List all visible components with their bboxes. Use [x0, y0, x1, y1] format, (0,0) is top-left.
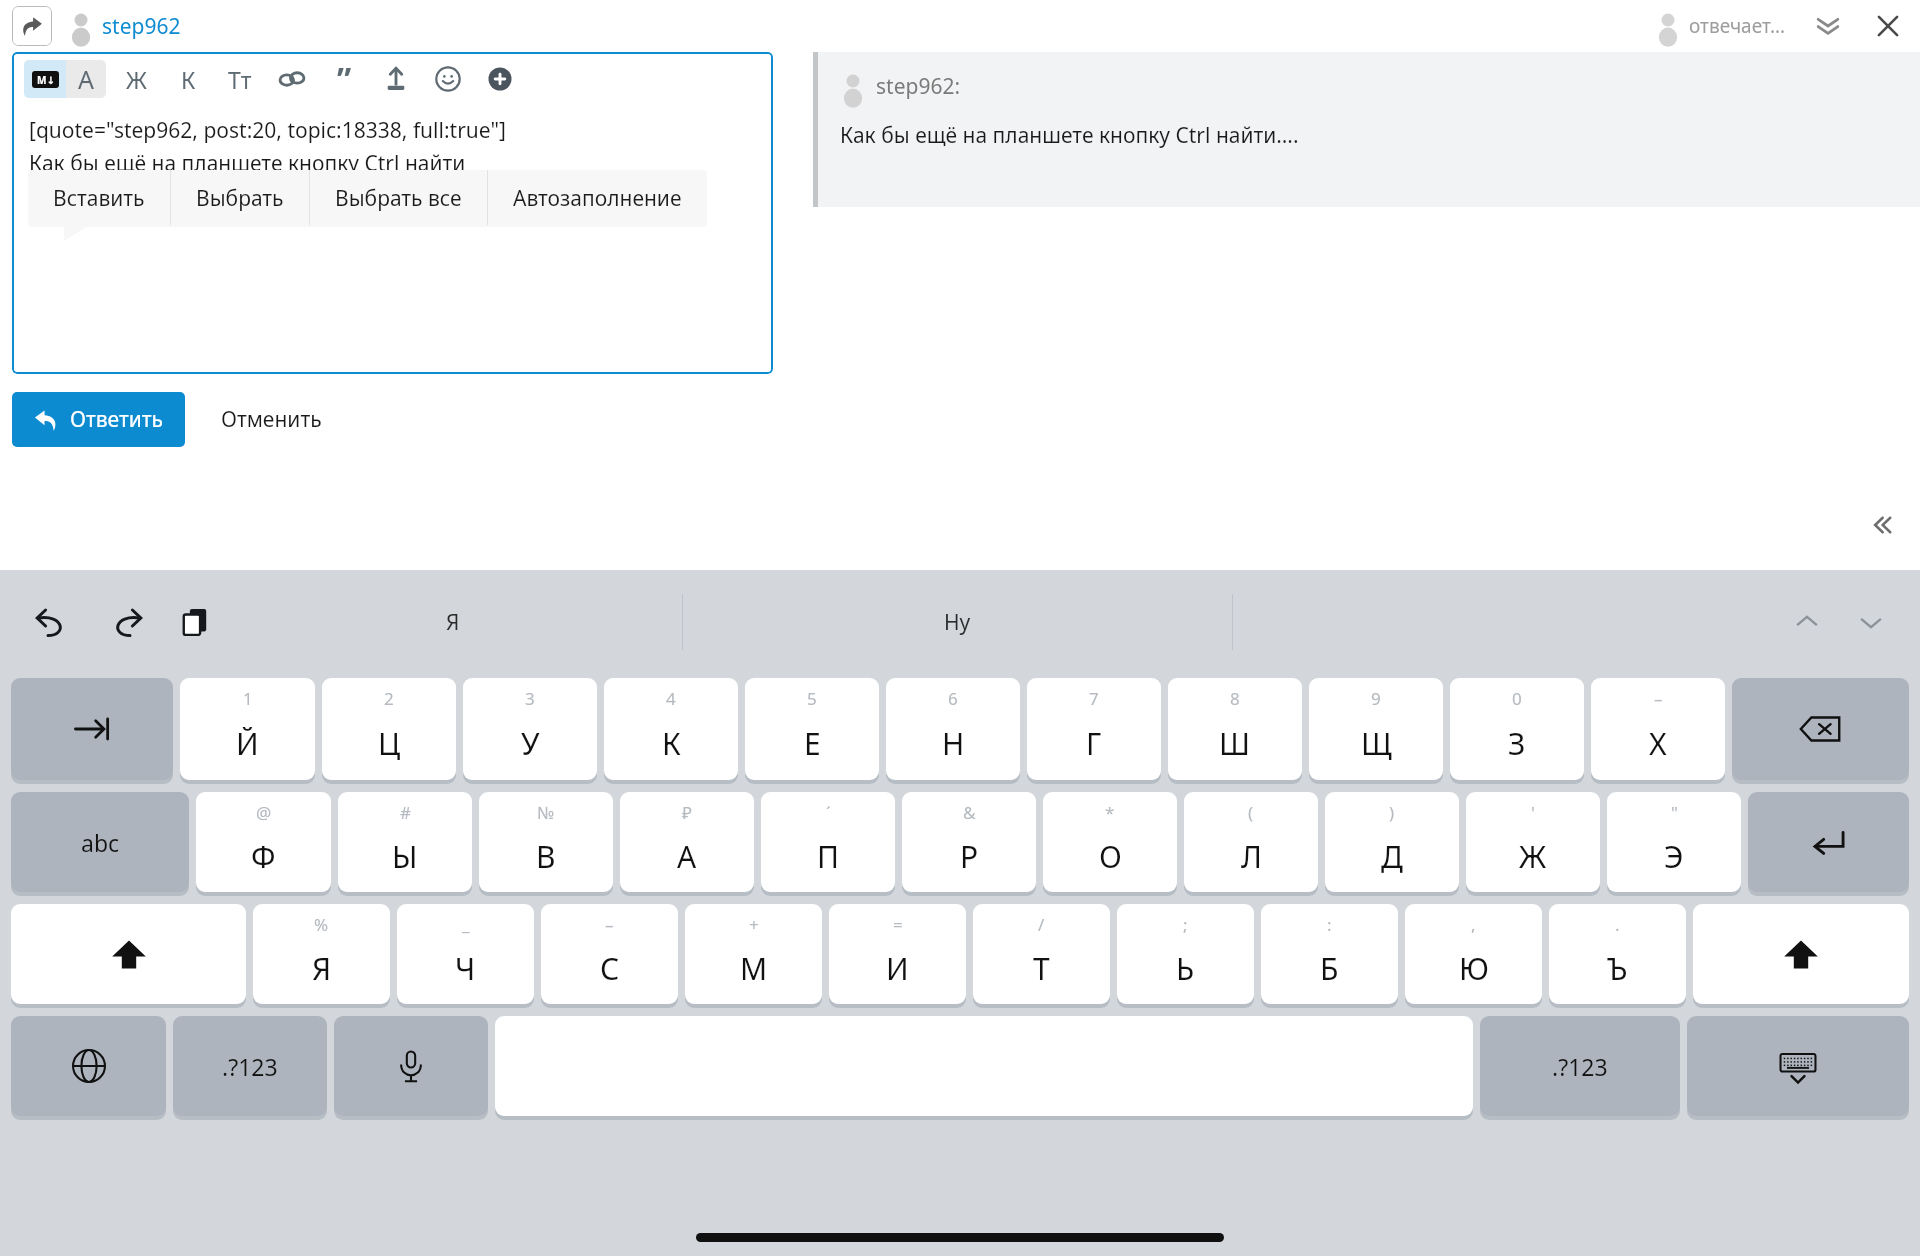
button[interactable]: Italic — [166, 57, 210, 101]
button[interactable]: Upload — [374, 57, 418, 101]
staticText: Я — [312, 948, 332, 989]
staticText: Б — [1320, 948, 1339, 989]
button[interactable]: ( — [1184, 792, 1318, 892]
staticText: О — [1099, 836, 1122, 877]
button[interactable]: Voice input — [334, 1016, 488, 1116]
button[interactable]: 2 — [322, 678, 456, 780]
staticText: № — [537, 801, 555, 824]
button[interactable]: Enter — [1748, 792, 1909, 892]
button[interactable]: Отменить — [211, 395, 332, 444]
button[interactable]: 7 — [1027, 678, 1161, 780]
button[interactable]: . — [1549, 904, 1686, 1004]
button[interactable]: Ответить — [12, 392, 185, 447]
button[interactable]: step962 — [102, 12, 181, 41]
button[interactable]: ₽ — [620, 792, 754, 892]
button[interactable]: = — [829, 904, 966, 1004]
staticText: 5 — [807, 687, 817, 710]
button[interactable]: 0 — [1450, 678, 1584, 780]
button[interactable]: Shift — [1693, 904, 1909, 1004]
staticText: Вставить — [53, 184, 145, 213]
button[interactable]: Font — [66, 60, 106, 98]
button[interactable]: Я — [224, 570, 682, 674]
button[interactable]: Close — [1870, 8, 1906, 44]
button[interactable]: & — [902, 792, 1036, 892]
staticText: 0 — [1512, 687, 1522, 710]
button[interactable]: Tab — [11, 678, 173, 780]
button[interactable]: ´ — [761, 792, 895, 892]
button[interactable]: # — [338, 792, 472, 892]
staticText: И — [886, 948, 909, 989]
button[interactable]: Markdown — [24, 60, 66, 98]
button[interactable]: Clipboard — [168, 594, 224, 650]
button[interactable]: , — [1405, 904, 1542, 1004]
button[interactable]: .?123 — [1480, 1016, 1680, 1116]
button[interactable]: ; — [1117, 904, 1254, 1004]
button[interactable]: : — [1261, 904, 1398, 1004]
button[interactable]: Backspace — [1732, 678, 1909, 780]
button[interactable]: Link — [270, 57, 314, 101]
button[interactable]: 4 — [604, 678, 738, 780]
staticText: А — [677, 836, 697, 877]
button[interactable]: * — [1043, 792, 1177, 892]
staticText: Выбрать все — [335, 184, 462, 213]
staticText: 2 — [384, 687, 394, 710]
button[interactable]: % — [253, 904, 390, 1004]
button[interactable]: Автозаполнение — [488, 170, 707, 227]
button[interactable]: – — [1591, 678, 1725, 780]
button[interactable]: Ну — [683, 570, 1232, 674]
staticText: К — [181, 64, 196, 95]
staticText: Tт — [228, 64, 252, 95]
staticText: 3 — [525, 687, 535, 710]
button[interactable]: 5 — [745, 678, 879, 780]
button[interactable]: abc — [11, 792, 189, 892]
button[interactable]: More options — [478, 57, 522, 101]
staticText: ' — [1531, 801, 1535, 824]
button[interactable]: Language — [11, 1016, 166, 1116]
staticText: Ж — [126, 64, 147, 95]
button[interactable]: Emoji — [426, 57, 470, 101]
staticText: Х — [1649, 723, 1667, 764]
button[interactable]: @ — [196, 792, 331, 892]
button[interactable]: Bold — [114, 57, 158, 101]
staticText: : — [1327, 913, 1332, 936]
button[interactable]: / — [973, 904, 1110, 1004]
staticText: Т — [1033, 948, 1050, 989]
button[interactable]: " — [1607, 792, 1741, 892]
button[interactable]: 6 — [886, 678, 1020, 780]
button[interactable]: _ — [397, 904, 534, 1004]
button[interactable]: 3 — [463, 678, 597, 780]
staticText: В — [536, 836, 556, 877]
button[interactable]: Hide keyboard — [1687, 1016, 1909, 1116]
button[interactable]: Heading — [218, 57, 262, 101]
button[interactable]: 9 — [1309, 678, 1443, 780]
button[interactable]: Undo — [24, 594, 80, 650]
button[interactable]: + — [685, 904, 822, 1004]
staticText: Р — [960, 836, 979, 877]
button[interactable]: Shift — [11, 904, 246, 1004]
staticText: – — [1654, 687, 1663, 710]
button[interactable]: Next field — [1846, 597, 1896, 647]
button[interactable]: Expand — [1810, 8, 1846, 44]
button[interactable]: Redo — [98, 594, 154, 650]
button[interactable]: Вставить — [28, 170, 170, 227]
button[interactable]: ) — [1325, 792, 1459, 892]
button[interactable]: № — [479, 792, 613, 892]
staticText: отвечает… — [1689, 13, 1786, 39]
staticText: ) — [1389, 801, 1395, 824]
staticText: 7 — [1089, 687, 1099, 710]
button[interactable]: Выбрать все — [310, 170, 487, 227]
button[interactable]: .?123 — [173, 1016, 327, 1116]
button[interactable]: – — [541, 904, 678, 1004]
button[interactable]: Reply — [12, 6, 52, 46]
button[interactable]: 8 — [1168, 678, 1302, 780]
staticText: .?123 — [222, 1051, 278, 1082]
button[interactable]: Collapse — [1858, 502, 1904, 548]
staticText: step962: — [876, 72, 961, 101]
button[interactable]: Quote — [322, 57, 366, 101]
button[interactable]: Выбрать — [171, 170, 309, 227]
button[interactable]: 1 — [180, 678, 315, 780]
button[interactable]: ' — [1466, 792, 1600, 892]
button[interactable]: Previous field — [1782, 597, 1832, 647]
